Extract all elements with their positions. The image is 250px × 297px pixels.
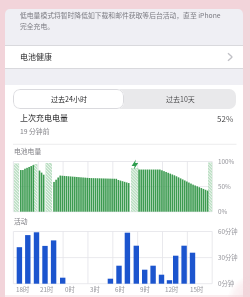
staticText: 12时	[165, 285, 179, 294]
button[interactable]: 过去24小时	[13, 89, 124, 109]
button[interactable]: 过去10天	[124, 89, 236, 109]
staticText: 3时	[90, 285, 100, 294]
staticText: 50%	[218, 182, 231, 191]
staticText: 100%	[218, 157, 235, 166]
button[interactable]: 电池健康	[5, 46, 243, 68]
staticText: 21时	[40, 285, 54, 294]
staticText: 0%	[218, 207, 228, 216]
staticText: 30分钟	[218, 253, 238, 262]
staticText: 0时	[65, 285, 75, 294]
staticText: 电池健康	[20, 51, 52, 63]
staticText: 18时	[16, 285, 30, 294]
staticText: 60分钟	[218, 227, 238, 236]
staticText: 15时	[190, 285, 204, 294]
staticText: 6时	[115, 285, 125, 294]
staticText: 9时	[140, 285, 150, 294]
staticText: 52%	[217, 113, 234, 125]
staticText: 活动	[14, 216, 28, 226]
staticText: 19 分钟前	[20, 126, 50, 136]
staticText: 0分钟	[218, 279, 235, 288]
staticText: 过去24小时	[51, 94, 87, 104]
staticText: 电池电量	[14, 146, 42, 156]
staticText: 上次充电电量	[20, 112, 68, 124]
staticText: 低电量模式将暂时降低如下载和邮件获取等后台活动，直至 iPhone 完全充电。	[20, 10, 221, 31]
staticText: 过去10天	[166, 94, 195, 104]
